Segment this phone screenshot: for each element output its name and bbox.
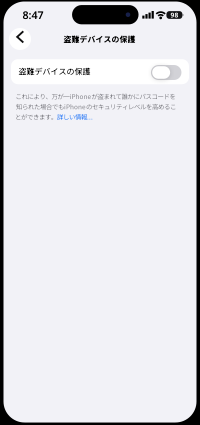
staticText: 8:47 xyxy=(22,8,43,22)
staticText: とができます。 xyxy=(15,112,57,121)
button[interactable]: Back xyxy=(9,28,31,50)
staticText: これにより、万が一iPhoneが盗まれて誰かにパスコードを xyxy=(15,91,175,101)
staticText: 詳しい情報... xyxy=(57,112,93,121)
button[interactable]: 詳しい情報... xyxy=(57,112,93,121)
button[interactable]: 盗難デバイスの保護 xyxy=(151,65,181,80)
staticText: 盗難デバイスの保護 xyxy=(63,33,135,44)
staticText: 98 xyxy=(170,11,178,19)
staticText: 知られた場合でもiPhoneのセキュリティレベルを高めるこ xyxy=(16,102,176,111)
staticText: 盗難デバイスの保護 xyxy=(18,65,90,77)
